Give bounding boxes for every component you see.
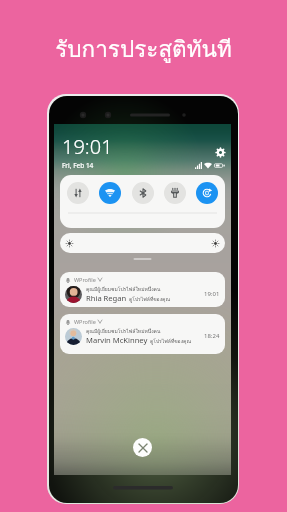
staticText: คุณมีผู้เยี่ยมชมโปรไฟล์ใหม่หนึ่งคน <box>86 327 161 335</box>
staticText: ดูโปรไฟล์ที่ของคุณ <box>129 295 171 303</box>
button[interactable]: Quick setting toggle <box>99 182 121 204</box>
button[interactable]: Quick setting toggle <box>196 182 218 204</box>
staticText: 18:24 <box>204 332 220 340</box>
button[interactable]: Brightness <box>60 233 225 253</box>
button[interactable]: Quick setting toggle <box>132 182 154 204</box>
button[interactable]: Quick setting toggle <box>164 182 186 204</box>
staticText: รับการประสูติทันที <box>0 31 287 67</box>
staticText: WProfile <box>74 318 96 325</box>
staticText: คุณมีผู้เยี่ยมชมโปรไฟล์ใหม่หนึ่งคน <box>86 285 161 293</box>
staticText: Rhia Regan <box>86 293 127 303</box>
staticText: Fri, Feb 14 <box>62 161 94 170</box>
button[interactable]: Quick setting toggle <box>67 182 89 204</box>
staticText: 19:01 <box>204 290 220 298</box>
button[interactable]: Clear all notifications <box>133 438 152 457</box>
staticText: WProfile <box>74 276 96 283</box>
staticText: ดูโปรไฟล์ที่ของคุณ <box>150 337 192 345</box>
staticText: Marvin McKinney <box>86 335 148 345</box>
staticText: 19:01 <box>62 133 113 160</box>
button[interactable]: Settings <box>216 148 225 157</box>
button[interactable]: WProfile <box>60 272 225 307</box>
button[interactable]: WProfile <box>60 314 225 354</box>
